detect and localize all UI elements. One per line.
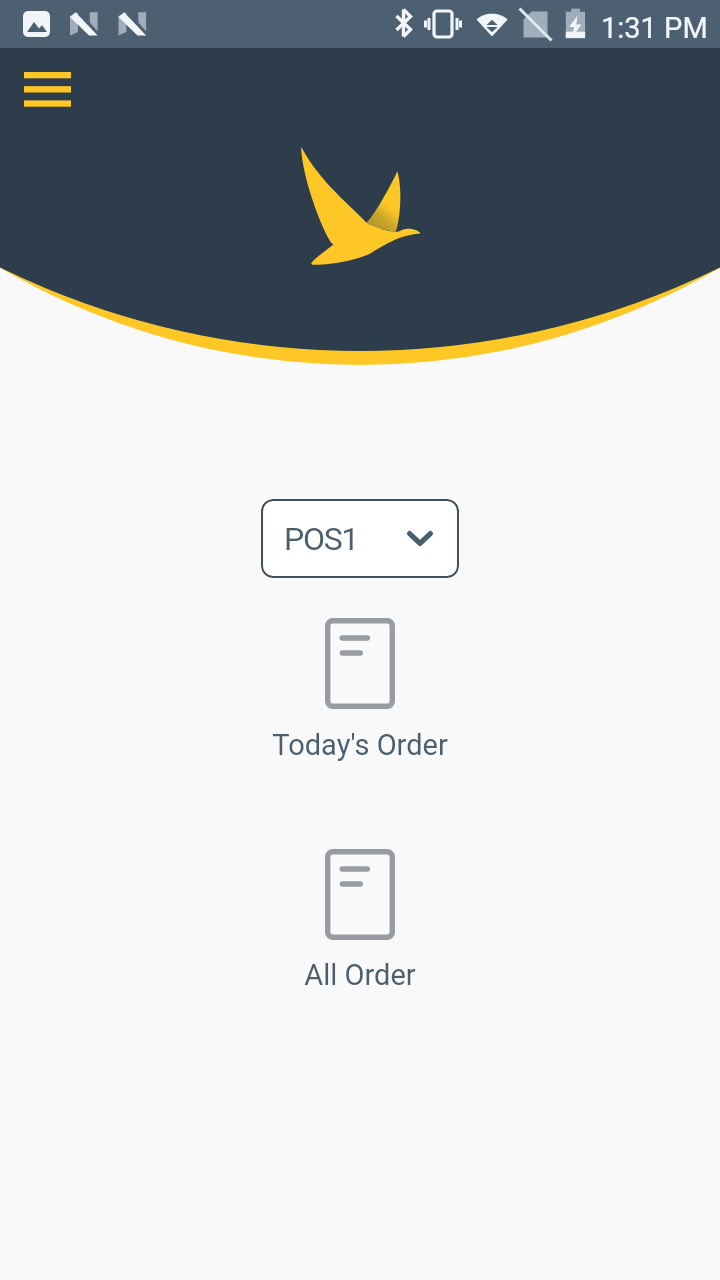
button[interactable]: Today's Order — [260, 606, 460, 772]
staticText: Today's Order — [272, 728, 448, 762]
staticText: All Order — [304, 958, 416, 992]
button[interactable]: POS1 — [261, 499, 459, 578]
button[interactable]: Open navigation menu — [6, 54, 89, 124]
staticText: 1:31 PM — [601, 11, 708, 45]
button[interactable]: All Order — [260, 837, 460, 1002]
staticText: POS1 — [284, 520, 359, 558]
